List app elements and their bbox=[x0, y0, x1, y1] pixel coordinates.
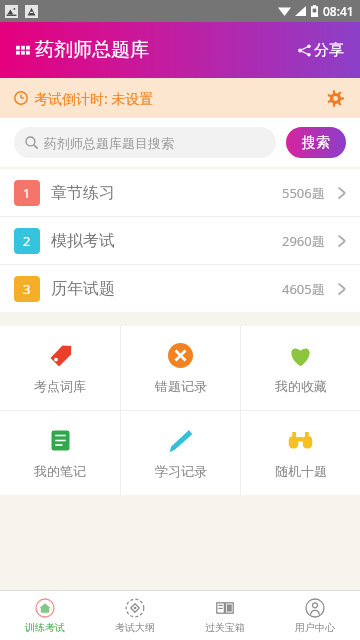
button[interactable]: 我的收藏 bbox=[241, 326, 360, 410]
button[interactable]: 药剂师总题库 bbox=[14, 36, 151, 64]
staticText: 2 bbox=[23, 232, 31, 250]
button[interactable]: 2 bbox=[0, 217, 360, 264]
button[interactable]: 学习记录 bbox=[121, 411, 240, 495]
button[interactable]: 过关宝箱 bbox=[180, 591, 270, 640]
staticText: 2960题 bbox=[282, 232, 325, 250]
staticText: 1 bbox=[23, 184, 31, 202]
staticText: 用户中心 bbox=[295, 621, 335, 634]
staticText: 4605题 bbox=[282, 280, 325, 298]
button[interactable]: 搜索 bbox=[286, 127, 346, 158]
staticText: 考试大纲 bbox=[115, 621, 155, 634]
staticText: 章节练习 bbox=[51, 183, 115, 203]
staticText: 我的收藏 bbox=[275, 378, 327, 394]
staticText: 分享 bbox=[314, 41, 344, 60]
button[interactable]: 考点词库 bbox=[0, 326, 120, 410]
staticText: 历年试题 bbox=[51, 279, 115, 299]
button[interactable]: 随机十题 bbox=[241, 411, 360, 495]
button[interactable]: 我的笔记 bbox=[0, 411, 120, 495]
staticText: 过关宝箱 bbox=[205, 621, 245, 634]
button[interactable]: 错题记录 bbox=[121, 326, 240, 410]
staticText: 随机十题 bbox=[275, 463, 327, 479]
staticText: 模拟考试 bbox=[51, 231, 115, 251]
button[interactable]: 设置倒计时 bbox=[320, 83, 350, 113]
staticText: 药剂师总题库 bbox=[35, 38, 149, 62]
staticText: 药剂师总题库题目搜索 bbox=[44, 135, 174, 151]
staticText: 5506题 bbox=[282, 184, 325, 202]
button[interactable]: 训练考试 bbox=[0, 591, 90, 640]
staticText: 3 bbox=[23, 280, 31, 298]
staticText: 08:41 bbox=[323, 3, 354, 19]
staticText: 考试倒计时: 未设置 bbox=[34, 89, 154, 108]
staticText: 训练考试 bbox=[25, 621, 65, 634]
staticText: 搜索 bbox=[302, 134, 330, 152]
button[interactable]: 考试倒计时: 未设置 bbox=[0, 78, 360, 118]
staticText: 学习记录 bbox=[155, 463, 207, 479]
staticText: 考点词库 bbox=[34, 378, 86, 394]
button[interactable]: 药剂师总题库题目搜索 bbox=[14, 127, 276, 158]
button[interactable]: 3 bbox=[0, 265, 360, 312]
button[interactable]: 分享 bbox=[294, 36, 348, 65]
staticText: 错题记录 bbox=[155, 378, 207, 394]
button[interactable]: 用户中心 bbox=[270, 591, 360, 640]
staticText: 我的笔记 bbox=[34, 463, 86, 479]
button[interactable]: 1 bbox=[0, 169, 360, 216]
button[interactable]: 考试大纲 bbox=[90, 591, 180, 640]
